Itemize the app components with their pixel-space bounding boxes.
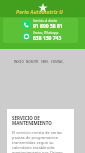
button[interactable]: INICIO: [13, 60, 25, 64]
staticText: 638 130 743: [33, 35, 62, 42]
staticText: 91 890 58 81: [33, 23, 63, 30]
other: WhatsApp: [22, 32, 31, 41]
staticText: SERV.: [41, 60, 49, 64]
staticText: INICIO: [14, 60, 24, 64]
button[interactable]: CONTAC.: [50, 60, 65, 64]
staticText: CONTAC.: [51, 60, 64, 64]
staticText: Ventas, Whatsapp: [33, 31, 59, 35]
staticText: SERVICIO DE MANTENIMIENTO: [12, 115, 52, 127]
staticText: El servicio consta de varias pautas de p…: [12, 130, 69, 153]
button[interactable]: NOSOTR.: [25, 60, 40, 64]
button[interactable]: SERV.: [40, 60, 50, 64]
button[interactable]: Llamar: [3, 18, 78, 30]
staticText: Perla Automotriz U: [16, 8, 63, 15]
button[interactable]: WhatsApp: [3, 30, 78, 42]
staticText: Servicio al cliente: [33, 19, 58, 23]
other: Llamar: [22, 20, 31, 29]
staticText: NOSOTR.: [26, 60, 39, 64]
